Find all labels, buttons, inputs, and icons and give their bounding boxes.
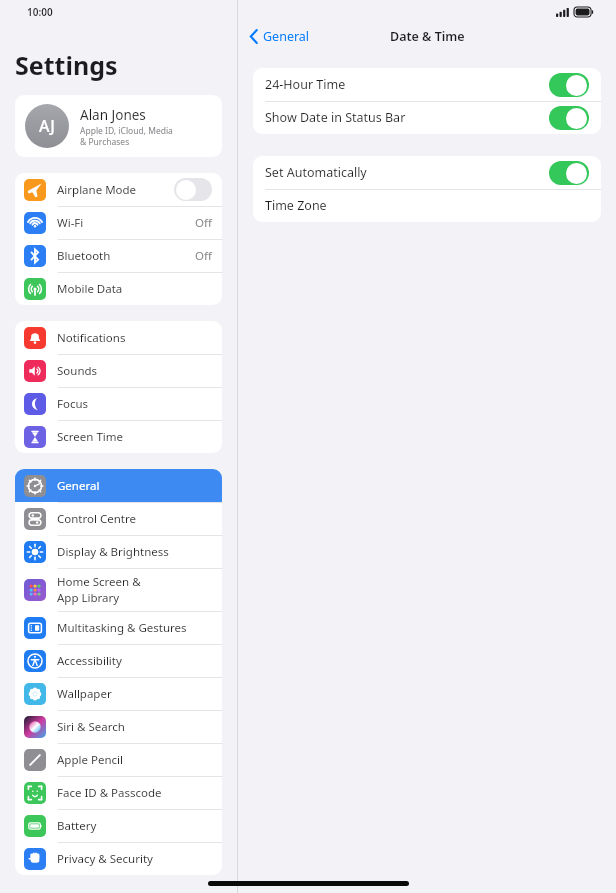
button[interactable]: Face ID & Passcode [15,776,222,809]
staticText: Notifications [57,330,126,346]
staticText: Screen Time [57,429,124,445]
button[interactable]: Set Automatically [253,156,601,189]
staticText: Accessibility [57,653,122,669]
staticText: Battery [57,818,97,834]
staticText: Apple Pencil [57,752,123,768]
button[interactable]: On [549,161,589,185]
staticText: Face ID & Passcode [57,785,162,801]
button[interactable]: Focus [15,387,222,420]
staticText: 24-Hour Time [265,76,346,93]
button[interactable]: Multitasking & Gestures [15,611,222,644]
button[interactable]: Wallpaper [15,677,222,710]
staticText: Privacy & Security [57,851,153,867]
button[interactable]: Show Date in Status Bar [253,101,601,134]
button[interactable]: Privacy & Security [15,842,222,875]
button[interactable]: Accessibility [15,644,222,677]
staticText: General [263,28,310,45]
button[interactable]: On [549,73,589,97]
button[interactable]: On [549,106,589,130]
staticText: Bluetooth [57,248,111,264]
staticText: Display & Brightness [57,544,169,560]
staticText: Time Zone [265,197,327,214]
staticText: Set Automatically [265,164,367,181]
staticText: Wi-Fi [57,215,84,231]
button[interactable]: Apple Pencil [15,743,222,776]
staticText: Mobile Data [57,281,123,297]
button[interactable]: Siri & Search [15,710,222,743]
button[interactable]: Notifications [15,321,222,354]
staticText: Multitasking & Gestures [57,620,187,636]
staticText: Date & Time [390,28,465,45]
button[interactable]: General [15,469,222,502]
staticText: Control Centre [57,511,136,527]
button[interactable]: Home Screen & [15,568,222,611]
button[interactable]: 24-Hour Time [253,68,601,101]
staticText: Home Screen & [57,574,141,590]
button[interactable]: Off [174,178,212,201]
staticText: Focus [57,396,89,412]
button[interactable]: Mobile Data [15,272,222,305]
staticText: Sounds [57,363,98,379]
button[interactable]: Display & Brightness [15,535,222,568]
button[interactable]: Time Zone [253,189,601,222]
staticText: Settings [15,48,118,82]
staticText: App Library [57,590,120,606]
button[interactable]: Control Centre [15,502,222,535]
staticText: Off [195,248,212,264]
staticText: AJ [39,115,55,137]
staticText: Show Date in Status Bar [265,109,406,126]
button[interactable]: Bluetooth [15,239,222,272]
button[interactable]: Airplane Mode [15,173,222,206]
button[interactable]: Battery [15,809,222,842]
staticText: General [57,478,100,494]
button[interactable]: General [247,26,313,47]
staticText: 10:00 [27,5,53,19]
button[interactable]: Screen Time [15,420,222,453]
button[interactable]: Sounds [15,354,222,387]
staticText: Siri & Search [57,719,125,735]
button[interactable]: Wi-Fi [15,206,222,239]
staticText: Airplane Mode [57,182,137,198]
staticText: Alan Jones [80,106,146,124]
staticText: Apple ID, iCloud, Media & Purchases [80,125,173,147]
staticText: Wallpaper [57,686,112,702]
button[interactable]: AJ [15,95,222,157]
staticText: Off [195,215,212,231]
